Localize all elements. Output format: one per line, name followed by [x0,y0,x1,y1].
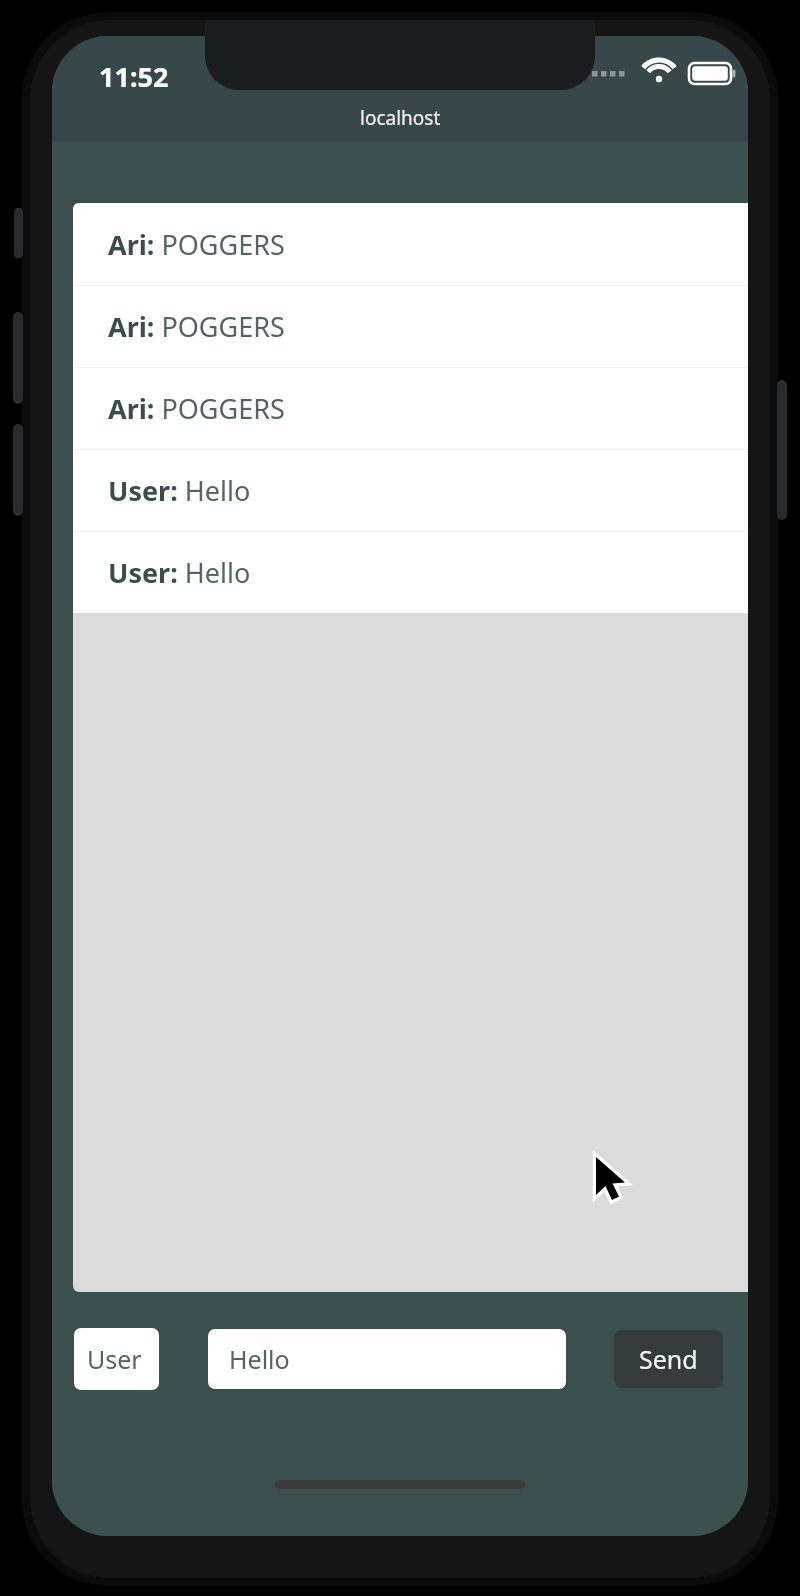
staticText: Ari: POGGERS [108,390,285,427]
staticText: localhost [360,105,441,131]
staticText: Send [639,1342,698,1376]
staticText: 11:52 [99,58,169,95]
button[interactable]: Ari: POGGERS [73,286,748,367]
button[interactable]: Ari: POGGERS [73,203,748,285]
button[interactable]: Ari: POGGERS [73,368,748,449]
staticText: Ari: POGGERS [108,226,285,263]
staticText: User: Hello [108,472,251,509]
staticText: Ari: POGGERS [108,308,285,345]
staticText: User: Hello [108,554,251,591]
button[interactable]: User: Hello [73,450,748,531]
staticText: User [87,1342,142,1376]
button[interactable]: User: Hello [73,532,748,613]
staticText: Hello [229,1342,290,1376]
button[interactable]: Hello [208,1329,566,1389]
button[interactable]: Send [614,1330,723,1388]
button[interactable]: User [74,1328,159,1390]
